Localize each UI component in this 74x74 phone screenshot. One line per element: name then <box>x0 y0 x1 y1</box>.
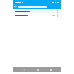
button[interactable]: Recent apps <box>48 67 53 72</box>
button[interactable]: More options <box>56 9 59 13</box>
button[interactable]: Home <box>35 67 40 72</box>
button[interactable]: Navigate up <box>13 4 18 9</box>
button[interactable]: More options <box>13 13 61 17</box>
button[interactable]: More options <box>56 13 59 17</box>
button[interactable]: More options <box>13 9 61 13</box>
button[interactable]: Back <box>21 67 26 72</box>
